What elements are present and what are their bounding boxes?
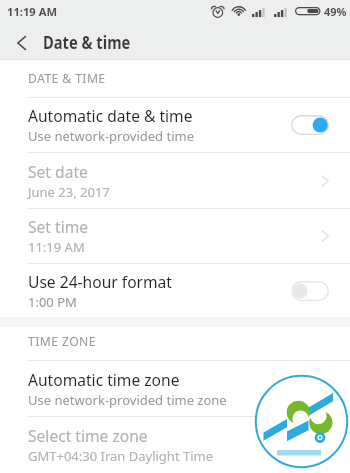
button[interactable]: Toggle <box>291 281 329 301</box>
staticText: DATE & TIME <box>28 70 106 87</box>
staticText: GMT+04:30 Iran Daylight Time <box>28 447 214 465</box>
button[interactable]: Set date <box>0 153 350 208</box>
button[interactable]: Back <box>0 26 38 59</box>
staticText: TIME ZONE <box>28 333 96 350</box>
staticText: 1:00 PM <box>28 293 77 311</box>
staticText: Set time <box>28 216 89 237</box>
button[interactable]: Set time <box>0 209 350 263</box>
staticText: 11:19 AM <box>28 238 85 256</box>
staticText: Use 24-hour format <box>28 271 172 292</box>
staticText: 49% <box>324 4 347 19</box>
button[interactable]: Toggle <box>291 115 329 135</box>
staticText: Automatic time zone <box>28 369 180 390</box>
button[interactable]: Automatic time zone <box>0 361 350 416</box>
staticText: June 23, 2017 <box>28 183 110 201</box>
staticText: Use network-provided time zone <box>28 391 227 409</box>
staticText: Date & time <box>43 31 131 54</box>
staticText: 11:19 AM <box>7 4 57 19</box>
button[interactable]: Automatic date & time <box>0 98 350 152</box>
staticText: Use network-provided time <box>28 127 194 145</box>
staticText: Select time zone <box>28 425 148 446</box>
button[interactable]: Select time zone <box>0 417 350 473</box>
staticText: Set date <box>28 161 88 182</box>
staticText: Automatic date & time <box>28 105 193 126</box>
button[interactable]: Use 24-hour format <box>0 264 350 317</box>
